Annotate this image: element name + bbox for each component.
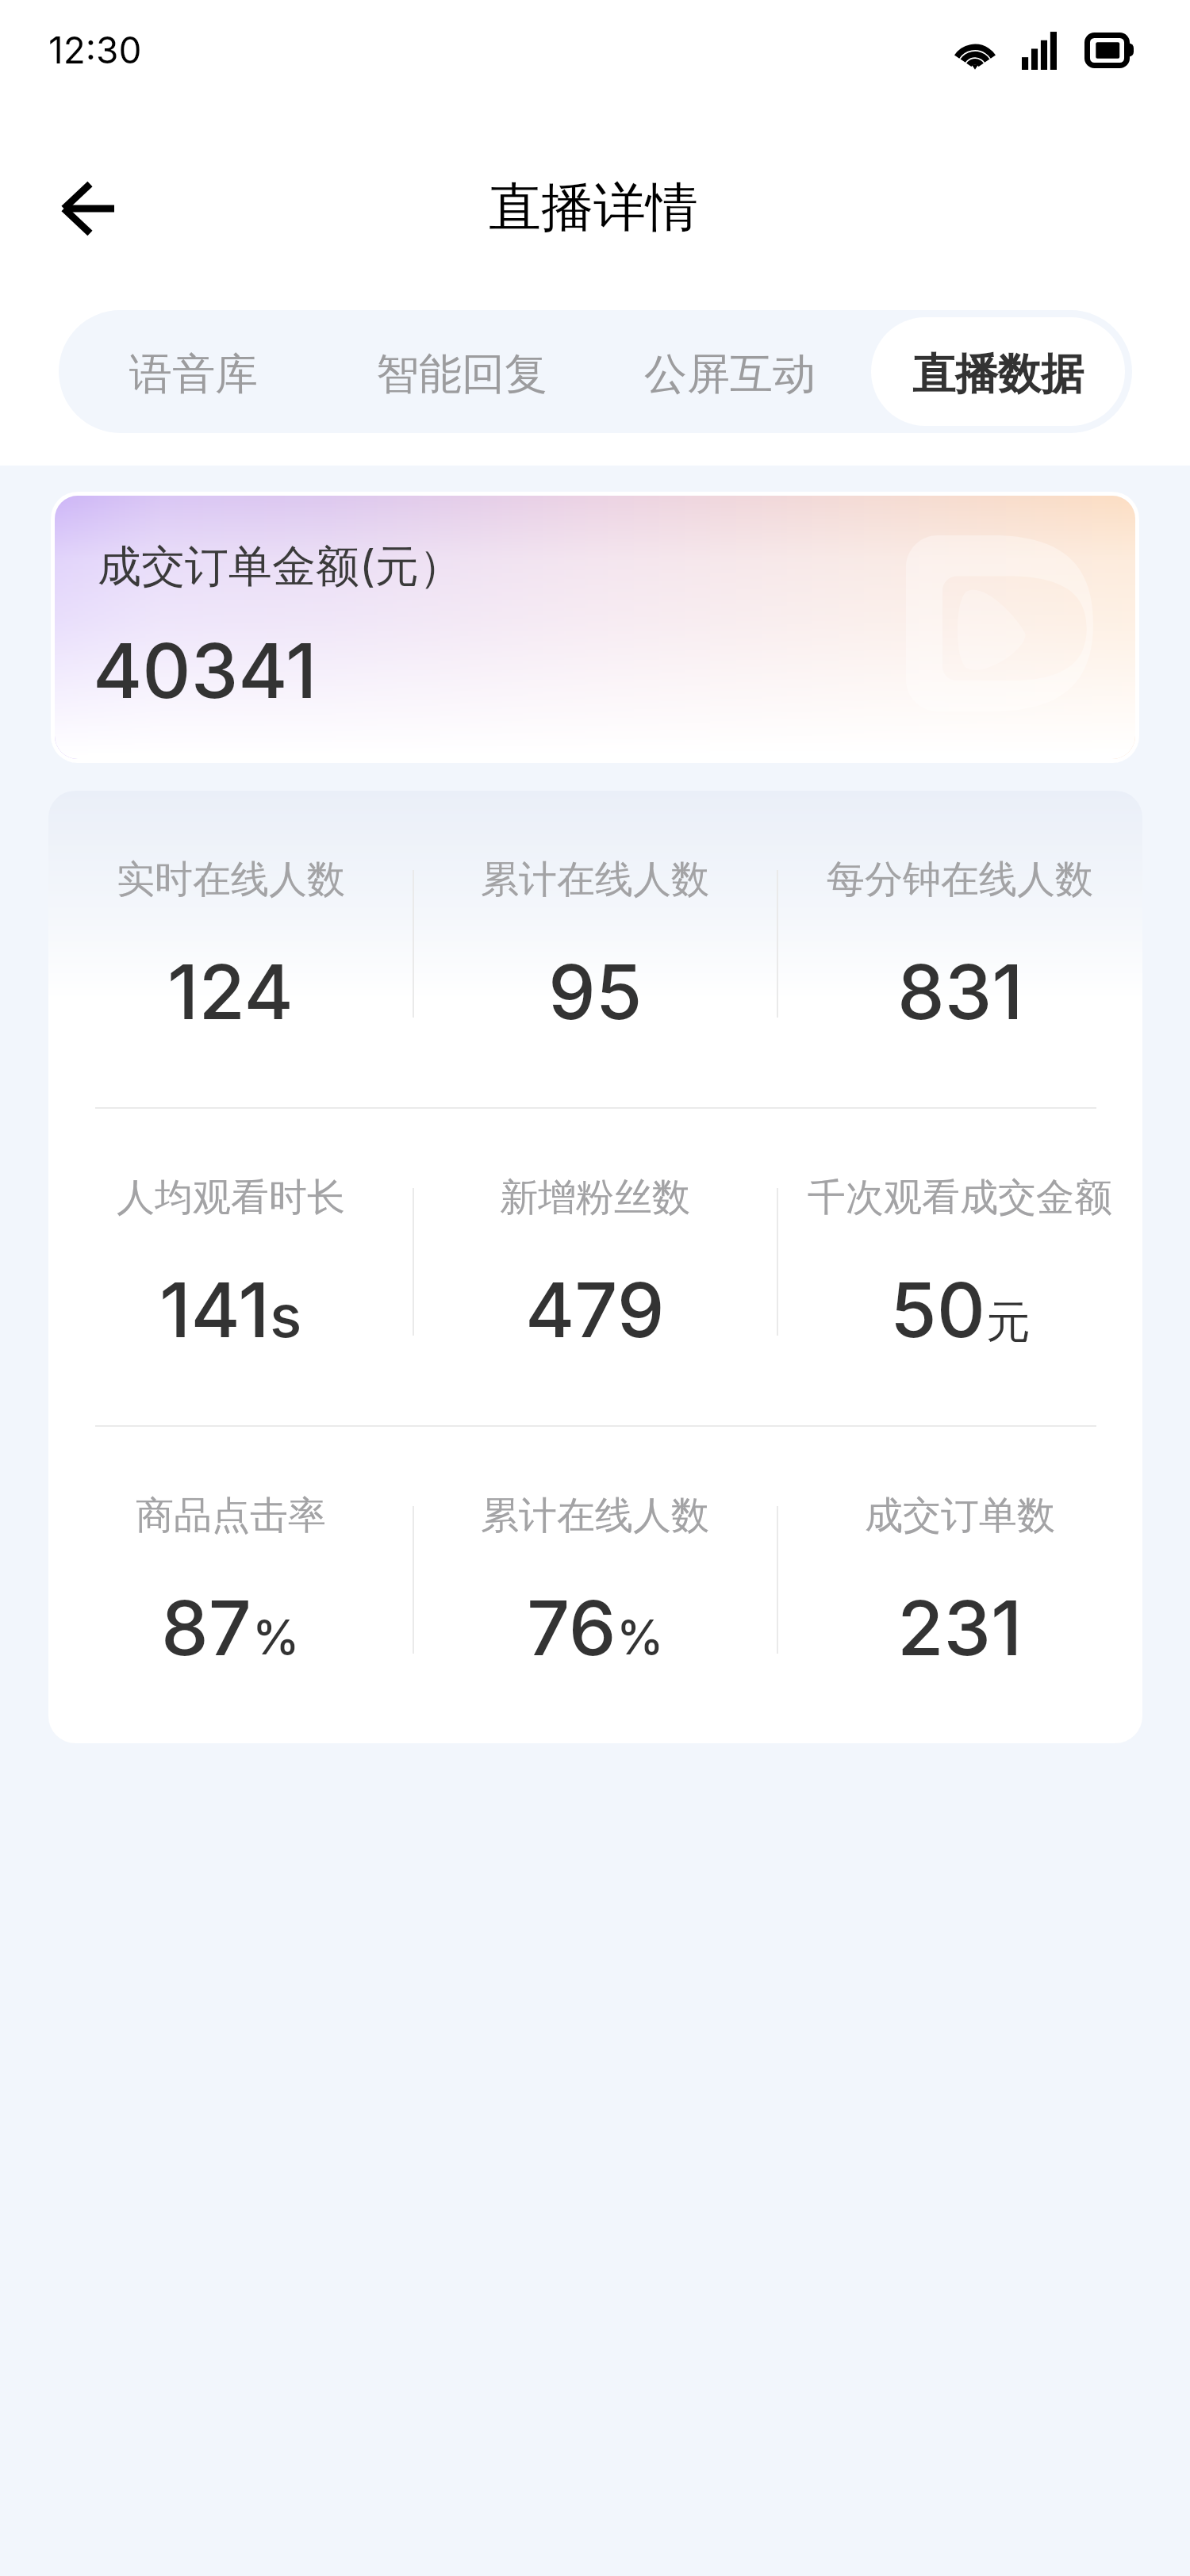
staticText: 语音库 <box>129 347 258 401</box>
staticText: 实时在线人数 <box>117 856 345 903</box>
button[interactable]: 成交订单数 <box>777 1427 1142 1743</box>
staticText: 40341 <box>93 625 317 716</box>
staticText: 831 <box>897 946 1023 1037</box>
staticText: 成交订单金额(元） <box>98 539 463 595</box>
staticText: 87 <box>161 1582 252 1673</box>
staticText: 每分钟在线人数 <box>827 856 1093 903</box>
button[interactable]: 新增粉丝数 <box>413 1109 777 1425</box>
staticText: 人均观看时长 <box>117 1174 345 1221</box>
staticText: 直播数据 <box>912 347 1084 401</box>
staticText: 累计在线人数 <box>481 1492 709 1539</box>
staticText: 新增粉丝数 <box>500 1174 690 1221</box>
staticText: 商品点击率 <box>136 1492 326 1539</box>
staticText: 直播详情 <box>489 174 698 240</box>
button[interactable]: 公屏互动 <box>603 317 857 426</box>
staticText: % <box>252 1608 300 1666</box>
button[interactable]: 商品点击率 <box>48 1427 413 1743</box>
button[interactable]: Back <box>37 158 139 259</box>
button[interactable]: 每分钟在线人数 <box>777 791 1142 1107</box>
staticText: 231 <box>897 1582 1023 1673</box>
staticText: 50 <box>890 1264 986 1355</box>
staticText: 元 <box>986 1294 1031 1351</box>
staticText: 124 <box>167 946 294 1037</box>
button[interactable]: 人均观看时长 <box>48 1109 413 1425</box>
button[interactable]: 累计在线人数 <box>413 1427 777 1743</box>
button[interactable]: 语音库 <box>66 317 321 426</box>
staticText: 智能回复 <box>376 347 547 401</box>
staticText: 公屏互动 <box>644 347 816 401</box>
staticText: 479 <box>525 1264 665 1355</box>
staticText: 成交订单数 <box>865 1492 1055 1539</box>
staticText: s <box>270 1279 302 1351</box>
staticText: 95 <box>548 946 643 1037</box>
button[interactable]: 直播数据 <box>871 317 1125 426</box>
staticText: 累计在线人数 <box>481 856 709 903</box>
staticText: 141 <box>159 1264 270 1355</box>
button[interactable]: 智能回复 <box>335 317 589 426</box>
button[interactable]: 千次观看成交金额 <box>777 1109 1142 1425</box>
staticText: % <box>616 1608 664 1666</box>
staticText: 千次观看成交金额 <box>808 1174 1112 1221</box>
staticText: 76 <box>527 1582 616 1673</box>
staticText: 12:30 <box>48 28 142 72</box>
button[interactable]: 累计在线人数 <box>413 791 777 1107</box>
button[interactable]: 实时在线人数 <box>48 791 413 1107</box>
